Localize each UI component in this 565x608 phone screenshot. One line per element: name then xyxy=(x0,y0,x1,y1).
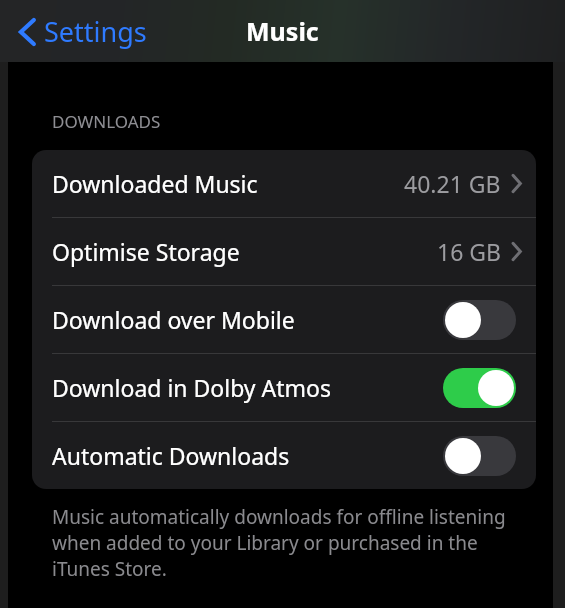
button[interactable]: Optimise Storage xyxy=(32,218,536,285)
button[interactable]: Automatic Downloads xyxy=(32,422,536,489)
staticText: Music automatically downloads for offlin… xyxy=(52,504,525,582)
staticText: DOWNLOADS xyxy=(52,110,161,133)
other: Download in Dolby Atmos xyxy=(443,368,516,408)
staticText: Automatic Downloads xyxy=(52,440,443,471)
button[interactable]: Downloaded Music xyxy=(32,150,536,217)
button[interactable]: Settings xyxy=(14,7,151,56)
other: Automatic Downloads xyxy=(443,436,516,476)
button[interactable]: Download in Dolby Atmos xyxy=(32,354,536,421)
staticText: 16 GB xyxy=(437,236,501,267)
staticText: Download over Mobile xyxy=(52,304,443,335)
staticText: Optimise Storage xyxy=(52,236,437,267)
staticText: Settings xyxy=(44,13,147,50)
staticText: Music xyxy=(246,14,319,48)
staticText: Downloaded Music xyxy=(52,168,404,199)
button[interactable]: Download over Mobile xyxy=(32,286,536,353)
staticText: 40.21 GB xyxy=(404,168,501,199)
other: Download over Mobile xyxy=(443,300,516,340)
staticText: Download in Dolby Atmos xyxy=(52,372,443,403)
